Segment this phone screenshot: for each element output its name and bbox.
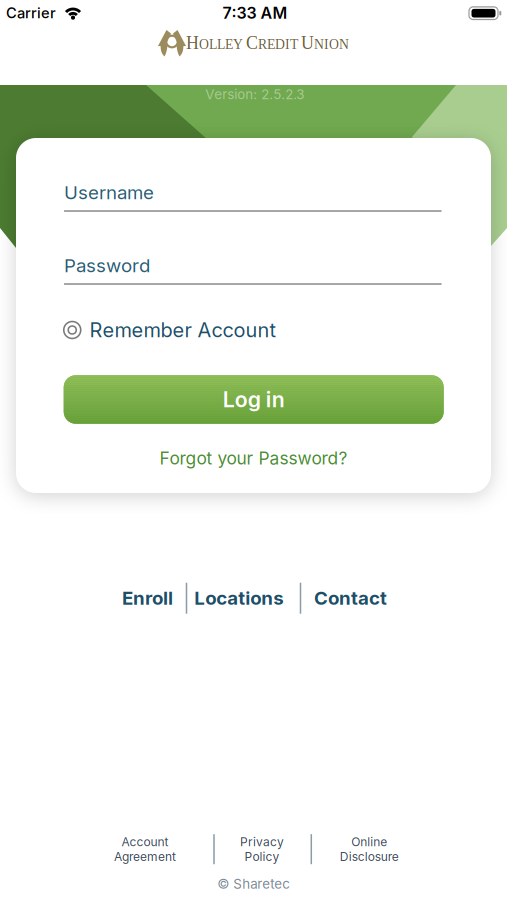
- staticText: NION: [314, 37, 349, 52]
- staticText: REDIT: [258, 37, 298, 52]
- staticText: Contact: [314, 587, 387, 609]
- staticText: © Sharetec: [217, 876, 290, 892]
- staticText: Username: [64, 181, 154, 203]
- staticText: H: [186, 33, 199, 53]
- staticText: Forgot your Password?: [159, 448, 347, 468]
- button[interactable]: Privacy: [240, 835, 284, 864]
- staticText: C: [246, 33, 258, 53]
- button[interactable]: Forgot your Password?: [159, 448, 347, 468]
- staticText: Agreement: [114, 849, 176, 864]
- staticText: OLLEY: [199, 37, 243, 52]
- button[interactable]: Online: [340, 835, 399, 864]
- staticText: Enroll: [122, 587, 173, 609]
- button[interactable]: Remember Account: [63, 318, 276, 342]
- staticText: Account: [121, 835, 168, 849]
- staticText: Disclosure: [340, 849, 399, 864]
- staticText: 7:33 AM: [222, 4, 287, 22]
- button[interactable]: Log in: [64, 375, 444, 424]
- button[interactable]: Username: [64, 181, 442, 212]
- staticText: Carrier: [6, 4, 56, 22]
- button[interactable]: Locations: [194, 587, 283, 609]
- button[interactable]: Account: [114, 835, 176, 864]
- staticText: Log in: [223, 387, 285, 412]
- staticText: Privacy: [240, 835, 284, 849]
- button[interactable]: Enroll: [122, 587, 173, 609]
- staticText: U: [301, 33, 314, 53]
- staticText: Password: [64, 254, 150, 276]
- button[interactable]: Contact: [314, 587, 387, 609]
- staticText: Online: [351, 835, 387, 849]
- staticText: Remember Account: [89, 318, 276, 342]
- staticText: Version: 2.5.2.3: [205, 87, 304, 102]
- staticText: [298, 37, 301, 52]
- staticText: Policy: [244, 849, 279, 864]
- button[interactable]: Password: [64, 254, 442, 285]
- staticText: Locations: [194, 587, 283, 609]
